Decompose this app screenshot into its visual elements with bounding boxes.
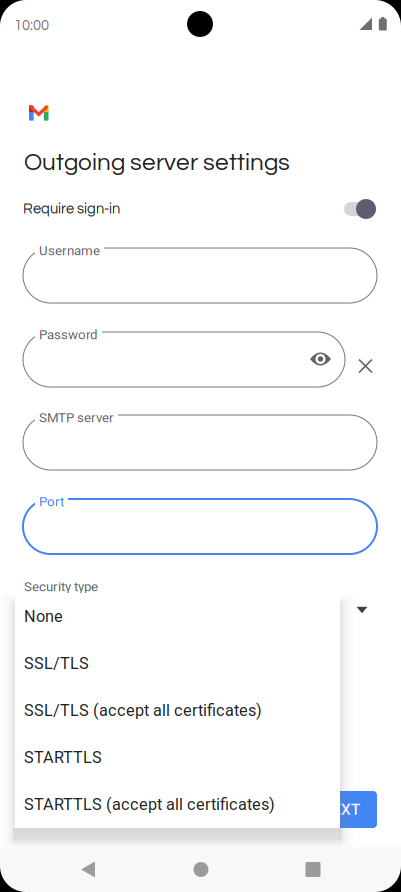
button[interactable]: Username xyxy=(23,248,377,303)
staticText: None xyxy=(24,607,63,626)
button[interactable]: SMTP server xyxy=(23,415,377,470)
staticText: SSL/TLS (accept all certificates) xyxy=(24,701,262,720)
staticText: SMTP server xyxy=(39,410,114,426)
button[interactable]: NEXT xyxy=(304,791,377,828)
button[interactable]: Require sign-in xyxy=(23,197,376,221)
staticText: Password xyxy=(39,327,98,343)
button[interactable]: Show password xyxy=(303,342,337,376)
staticText: Require sign-in xyxy=(23,201,120,216)
staticText: SSL/TLS xyxy=(24,654,89,673)
button[interactable]: Port xyxy=(23,499,377,554)
staticText: NEXT xyxy=(321,800,360,818)
staticText: Outgoing server settings xyxy=(24,150,290,175)
button[interactable]: SSL/TLS (accept all certificates) xyxy=(15,687,340,734)
button[interactable]: Back xyxy=(64,847,112,892)
button[interactable]: None xyxy=(15,593,340,640)
staticText: Security type xyxy=(24,579,98,595)
staticText: Port xyxy=(39,494,64,510)
button[interactable]: Security type xyxy=(345,593,379,627)
staticText: STARTTLS (accept all certificates) xyxy=(24,795,275,814)
button[interactable]: STARTTLS (accept all certificates) xyxy=(15,781,340,828)
staticText: STARTTLS xyxy=(24,748,102,767)
button[interactable]: Clear xyxy=(350,351,380,381)
button[interactable]: Home xyxy=(177,847,225,892)
staticText: 10:00 xyxy=(14,18,49,33)
staticText: Username xyxy=(39,243,100,259)
button[interactable]: SSL/TLS xyxy=(15,640,340,687)
button[interactable]: Password xyxy=(23,332,345,387)
button[interactable]: STARTTLS xyxy=(15,734,340,781)
button[interactable]: Recent apps xyxy=(289,847,337,892)
